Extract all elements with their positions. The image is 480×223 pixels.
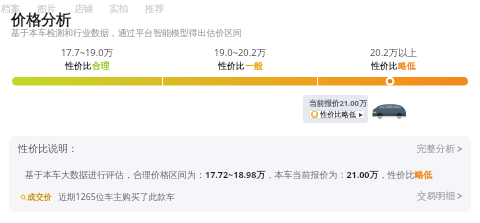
staticText: 性价比说明：: [18, 142, 78, 155]
staticText: 合理: [92, 61, 110, 72]
staticText: 基于本车大数据进行评估，合理价格区间为：17.72~18.98万，本车当前报价为…: [25, 168, 433, 180]
staticText: 性价比: [371, 61, 398, 72]
button[interactable]: 推荐: [145, 3, 164, 15]
staticText: 基于本车检测和行业数据，通过平台智能模型得出估价区间: [11, 27, 243, 38]
staticText: 略低: [398, 61, 416, 72]
staticText: 19.0~20.2万: [214, 46, 267, 59]
staticText: 成交价: [27, 192, 52, 202]
staticText: 实拍: [109, 3, 128, 15]
staticText: 交易明细: [417, 190, 455, 202]
button[interactable]: 店铺: [74, 3, 93, 15]
staticText: 近期1265位车主购买了此款车: [58, 191, 175, 203]
staticText: 性价比: [218, 61, 245, 72]
staticText: 推荐: [145, 3, 164, 15]
button[interactable]: 交易明细: [417, 190, 462, 202]
staticText: 店铺: [74, 3, 93, 15]
button[interactable]: 实拍: [109, 3, 128, 15]
staticText: 17.7~19.0万: [61, 46, 114, 59]
staticText: 图片: [37, 3, 56, 15]
staticText: 一般: [245, 61, 263, 72]
button[interactable]: 当前报价21.00万: [303, 95, 368, 123]
staticText: 价格分析: [11, 11, 71, 30]
staticText: 性价比: [65, 61, 92, 72]
button[interactable]: 图片: [37, 3, 56, 15]
button[interactable]: 档案: [1, 3, 20, 15]
staticText: 完整分析: [417, 143, 455, 155]
button[interactable]: 完整分析: [417, 143, 462, 155]
staticText: 20.2万以上: [370, 46, 417, 59]
staticText: 当前报价21.00万: [309, 98, 367, 108]
staticText: 性价比略低: [320, 110, 356, 119]
staticText: 档案: [1, 3, 20, 15]
